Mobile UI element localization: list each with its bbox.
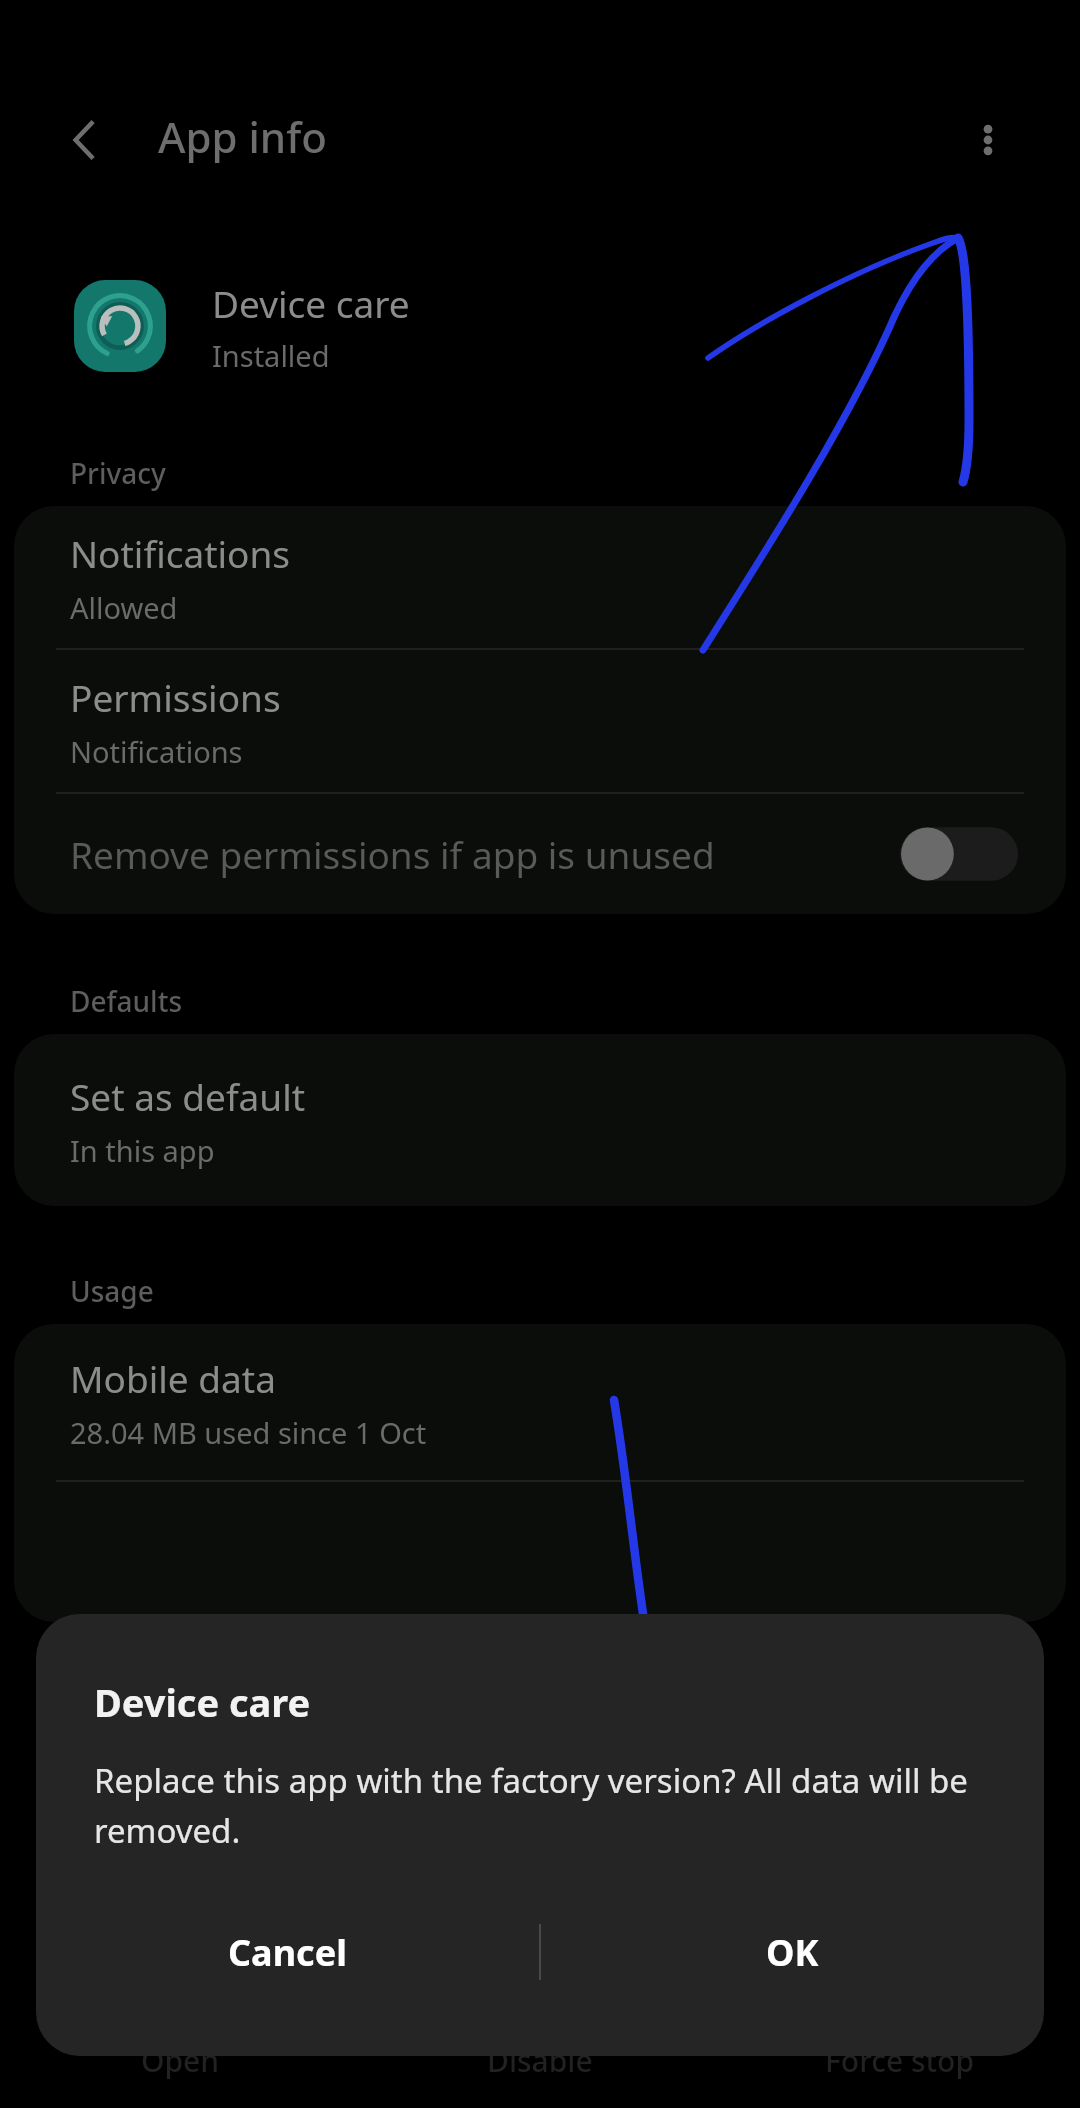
staticText: Defaults xyxy=(70,982,183,1020)
staticText: OK xyxy=(766,1928,819,1977)
button[interactable]: Remove permissions if app is unused xyxy=(14,794,1066,914)
button[interactable]: Cancel xyxy=(36,1888,539,2016)
button[interactable]: Back xyxy=(48,104,120,176)
staticText: Open xyxy=(141,2040,220,2081)
staticText: Set as default xyxy=(70,1071,306,1121)
staticText: Device care xyxy=(212,278,410,328)
button[interactable]: Force stop xyxy=(720,2012,1080,2108)
button[interactable]: Disable xyxy=(360,2012,720,2108)
staticText: Privacy xyxy=(70,454,166,492)
staticText: Notifications xyxy=(70,732,243,771)
staticText: Mobile data xyxy=(70,1353,276,1403)
staticText: Permissions xyxy=(70,672,281,722)
staticText: Replace this app with the factory versio… xyxy=(94,1758,990,1853)
staticText: Usage xyxy=(70,1272,154,1310)
button[interactable]: Open xyxy=(0,2012,360,2108)
staticText: In this app xyxy=(70,1131,215,1170)
button[interactable]: Notifications xyxy=(14,506,1066,648)
staticText: Remove permissions if app is unused xyxy=(70,829,900,879)
staticText: Notifications xyxy=(70,528,291,578)
button[interactable]: OK xyxy=(541,1888,1044,2016)
staticText: Cancel xyxy=(228,1928,347,1977)
button[interactable]: Set as default xyxy=(14,1034,1066,1206)
staticText: Installed xyxy=(212,336,330,375)
staticText: App info xyxy=(158,108,327,165)
button[interactable]: Mobile data xyxy=(14,1324,1066,1480)
staticText: Allowed xyxy=(70,588,178,627)
staticText: Device care xyxy=(94,1676,311,1728)
staticText: 28.04 MB used since 1 Oct xyxy=(70,1413,427,1452)
staticText: Force stop xyxy=(825,2040,975,2081)
button[interactable]: More options xyxy=(952,104,1024,176)
button[interactable]: Permissions xyxy=(14,650,1066,792)
staticText: Disable xyxy=(487,2040,593,2081)
button[interactable]: Device care xyxy=(0,266,1080,386)
